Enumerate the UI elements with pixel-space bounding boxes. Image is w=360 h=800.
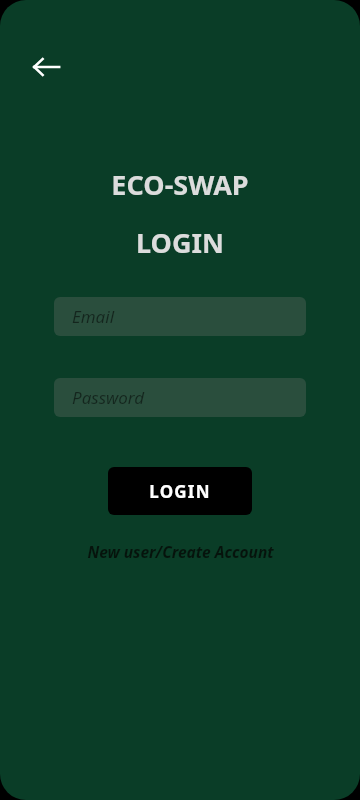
- staticText: New user/Create Account: [87, 541, 274, 562]
- staticText: LOGIN: [136, 224, 224, 261]
- staticText: ECO-SWAP: [111, 166, 249, 203]
- button[interactable]: Email: [54, 297, 306, 336]
- button[interactable]: LOGIN: [108, 467, 252, 515]
- staticText: LOGIN: [149, 480, 211, 503]
- button[interactable]: Back: [24, 50, 68, 84]
- button[interactable]: Password: [54, 378, 306, 417]
- staticText: Password: [72, 386, 145, 409]
- button[interactable]: New user/Create Account: [79, 537, 282, 566]
- staticText: Email: [72, 305, 115, 328]
